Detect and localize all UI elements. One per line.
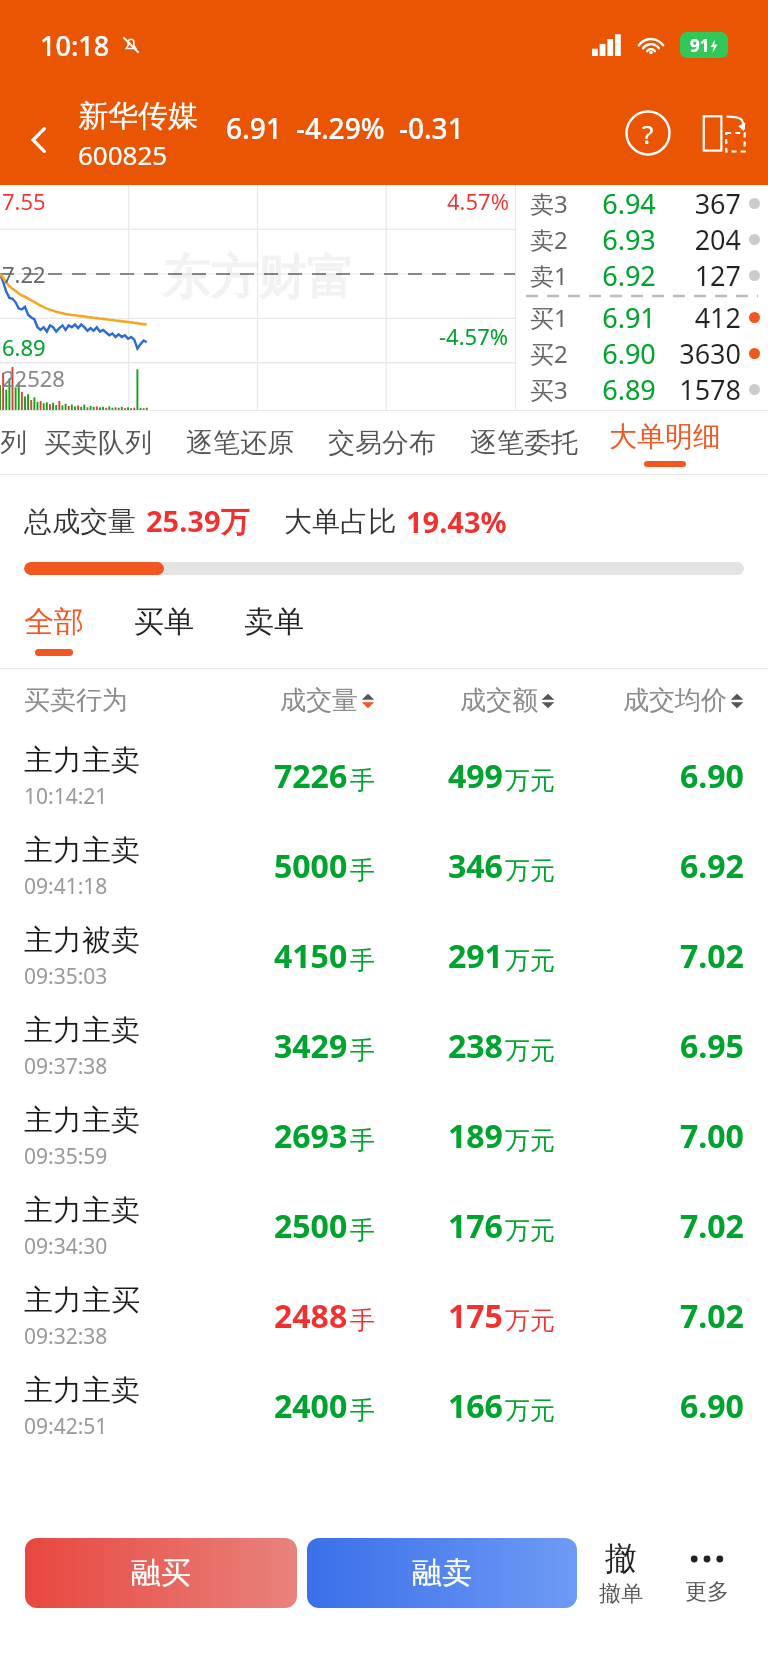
staticText: 6.90 <box>680 1384 744 1428</box>
button[interactable]: 卖2 <box>516 221 768 257</box>
staticText: 新华传媒 <box>78 97 198 135</box>
staticText: 600825 <box>78 137 168 172</box>
staticText: 09:35:03 <box>24 962 108 991</box>
staticText: 19.43% <box>406 502 507 541</box>
button[interactable]: 主力主卖 <box>0 1181 768 1271</box>
staticText: 手 <box>350 855 375 886</box>
staticText: 更多 <box>685 1578 729 1606</box>
button[interactable]: 主力主卖 <box>0 821 768 911</box>
button[interactable]: 逐笔还原 <box>169 426 311 460</box>
button[interactable]: 买1 <box>516 299 768 335</box>
staticText: 大单明细 <box>609 419 721 454</box>
staticText: 撤 <box>605 1538 637 1578</box>
button[interactable]: 分享 <box>686 95 762 171</box>
staticText: 手 <box>350 1305 375 1336</box>
staticText: 万元 <box>505 945 555 976</box>
button[interactable]: 买2 <box>516 335 768 371</box>
button[interactable]: 主力主卖 <box>0 1091 768 1181</box>
button[interactable]: 更多 <box>664 1540 750 1606</box>
staticText: 2693 <box>274 1114 348 1158</box>
button[interactable]: 主力主卖 <box>0 1001 768 1091</box>
staticText: 3630 <box>666 335 741 371</box>
button[interactable]: 卖3 <box>516 185 768 221</box>
staticText: 买卖队列 <box>44 426 152 460</box>
staticText: 175 <box>448 1294 503 1338</box>
staticText: 6.92 <box>592 257 666 293</box>
staticText: 卖3 <box>530 187 592 220</box>
button[interactable]: 买3 <box>516 371 768 407</box>
staticText: 卖2 <box>530 223 592 256</box>
staticText: 融卖 <box>412 1554 472 1592</box>
staticText: 成交量 <box>280 684 358 717</box>
staticText: 91 <box>690 34 710 57</box>
staticText: 4150 <box>274 934 348 978</box>
staticText: 7.02 <box>680 1294 744 1338</box>
staticText: ? <box>642 116 654 151</box>
staticText: 主力主卖 <box>24 1012 140 1049</box>
staticText: 手 <box>350 1395 375 1426</box>
button[interactable]: 主力主卖 <box>0 731 768 821</box>
staticText: 逐笔还原 <box>186 426 294 460</box>
button[interactable]: 主力被卖 <box>0 911 768 1001</box>
button[interactable]: 撤 <box>578 1538 664 1608</box>
staticText: 6.89 <box>592 371 666 407</box>
staticText: 412 <box>666 299 741 335</box>
staticText: 万元 <box>505 855 555 886</box>
staticText: 291 <box>448 934 503 978</box>
staticText: 主力主卖 <box>24 832 140 869</box>
staticText: 手 <box>350 945 375 976</box>
button[interactable]: 成交量 <box>196 684 375 717</box>
staticText: 万元 <box>505 765 555 796</box>
staticText: 主力主卖 <box>24 1372 140 1409</box>
staticText: 买1 <box>530 301 592 334</box>
button[interactable]: 主力主买 <box>0 1271 768 1361</box>
button[interactable]: 逐笔委托 <box>453 426 595 460</box>
staticText: 手 <box>350 1215 375 1246</box>
staticText: 6.94 <box>592 185 666 221</box>
button[interactable]: 主力主卖 <box>0 1361 768 1451</box>
staticText: 2500 <box>274 1204 348 1248</box>
staticText: 4.57% <box>447 186 509 216</box>
button[interactable]: 大单明细 <box>595 419 729 467</box>
staticText: 127 <box>666 257 741 293</box>
staticText: 主力主卖 <box>24 1192 140 1229</box>
staticText: 09:41:18 <box>24 872 108 901</box>
staticText: 1578 <box>666 371 741 407</box>
button[interactable]: 买卖队列 <box>27 426 169 460</box>
staticText: 买2 <box>530 337 592 370</box>
button[interactable]: 成交均价 <box>555 684 744 717</box>
staticText: 7.02 <box>680 1204 744 1248</box>
staticText: 346 <box>448 844 503 888</box>
staticText: 7226 <box>274 754 348 798</box>
button[interactable]: 融卖 <box>307 1538 577 1608</box>
button[interactable]: 卖单 <box>244 603 354 649</box>
button[interactable]: 卖1 <box>516 257 768 293</box>
staticText: 22528 <box>2 363 65 393</box>
staticText: 204 <box>666 221 741 257</box>
staticText: 万元 <box>505 1395 555 1426</box>
staticText: 10:18 <box>40 27 110 64</box>
staticText: 卖单 <box>244 603 304 641</box>
staticText: 09:34:30 <box>24 1232 108 1261</box>
button[interactable]: 返回 <box>0 95 78 185</box>
button[interactable]: 列 <box>0 426 27 460</box>
staticText: 367 <box>666 185 741 221</box>
staticText: 总成交量 <box>24 504 136 539</box>
staticText: 6.90 <box>592 335 666 371</box>
button[interactable]: 融买 <box>25 1538 297 1608</box>
staticText: 7.00 <box>680 1114 744 1158</box>
staticText: 买卖行为 <box>24 684 196 717</box>
button[interactable]: 交易分布 <box>311 426 453 460</box>
staticText: 09:32:38 <box>24 1322 108 1351</box>
staticText: 2488 <box>274 1294 348 1338</box>
staticText: 手 <box>350 765 375 796</box>
staticText: 主力主卖 <box>24 1102 140 1139</box>
button[interactable]: 帮助 <box>610 95 686 171</box>
staticText: 撤单 <box>599 1580 643 1608</box>
button[interactable]: 买单 <box>134 603 244 649</box>
button[interactable]: 成交额 <box>375 684 555 717</box>
staticText: 6.89 <box>2 332 46 362</box>
button[interactable]: 全部 <box>24 603 134 656</box>
staticText: 成交额 <box>460 684 538 717</box>
staticText: 交易分布 <box>328 426 436 460</box>
